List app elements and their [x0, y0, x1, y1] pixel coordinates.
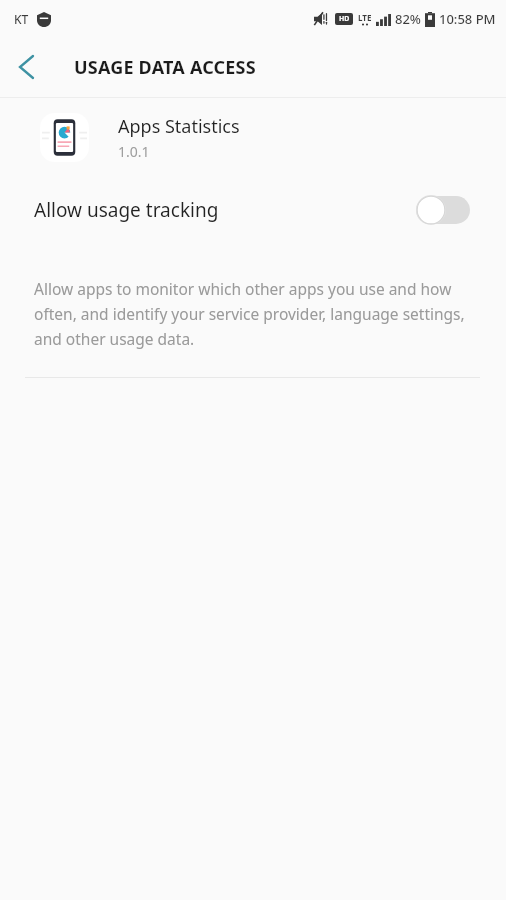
button[interactable]: Allow usage tracking — [0, 176, 506, 244]
other: Allow usage tracking toggle, off — [416, 195, 470, 225]
button[interactable]: Apps Statistics — [0, 98, 506, 176]
staticText: KT — [14, 11, 29, 27]
button[interactable]: Navigate up — [0, 41, 52, 93]
staticText: 82% — [395, 10, 421, 28]
staticText: 1.0.1 — [118, 142, 150, 161]
staticText: Allow usage tracking — [34, 197, 416, 223]
staticText: LTE — [358, 12, 372, 23]
staticText: Allow apps to monitor which other apps y… — [34, 278, 482, 349]
staticText: USAGE DATA ACCESS — [74, 55, 256, 80]
staticText: Apps Statistics — [118, 114, 240, 139]
staticText: HD — [339, 14, 350, 24]
staticText: 10:58 PM — [439, 10, 496, 28]
